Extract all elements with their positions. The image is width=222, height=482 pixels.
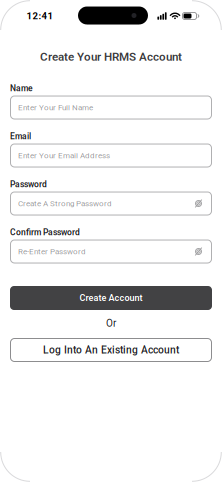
staticText: Confirm Password bbox=[10, 227, 80, 237]
staticText: Create Account bbox=[79, 293, 142, 303]
button[interactable]: Create Account bbox=[10, 286, 212, 310]
button[interactable]: Show Password bbox=[193, 246, 204, 257]
button[interactable]: Log Into An Existing Account bbox=[10, 338, 212, 362]
staticText: Create A Strong Password bbox=[18, 199, 112, 208]
staticText: Create Your HRMS Account bbox=[40, 50, 182, 64]
staticText: Or bbox=[106, 317, 116, 329]
staticText: Enter Your Email Address bbox=[18, 151, 110, 160]
staticText: Log Into An Existing Account bbox=[43, 344, 179, 356]
staticText: Re-Enter Password bbox=[18, 247, 86, 256]
staticText: 12:41 bbox=[26, 10, 53, 22]
staticText: Password bbox=[10, 179, 47, 189]
button[interactable]: Show Password bbox=[193, 198, 204, 209]
staticText: Enter Your Full Name bbox=[18, 103, 93, 112]
staticText: Email bbox=[10, 131, 31, 141]
staticText: Name bbox=[10, 83, 33, 93]
